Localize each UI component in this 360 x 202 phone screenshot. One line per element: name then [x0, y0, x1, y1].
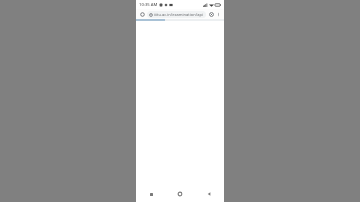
button[interactable]: Stop loading [207, 10, 215, 18]
button[interactable]: More options [215, 11, 222, 18]
button[interactable]: Home [138, 10, 146, 18]
button[interactable]: Back [204, 189, 214, 199]
button[interactable]: Home [175, 189, 185, 199]
button[interactable]: iiitu.ac.in/examination/api [147, 11, 206, 18]
button[interactable]: Recent apps [146, 189, 156, 199]
staticText: 10:35 AM [139, 2, 158, 8]
staticText: iiitu.ac.in/examination/api [154, 12, 203, 17]
